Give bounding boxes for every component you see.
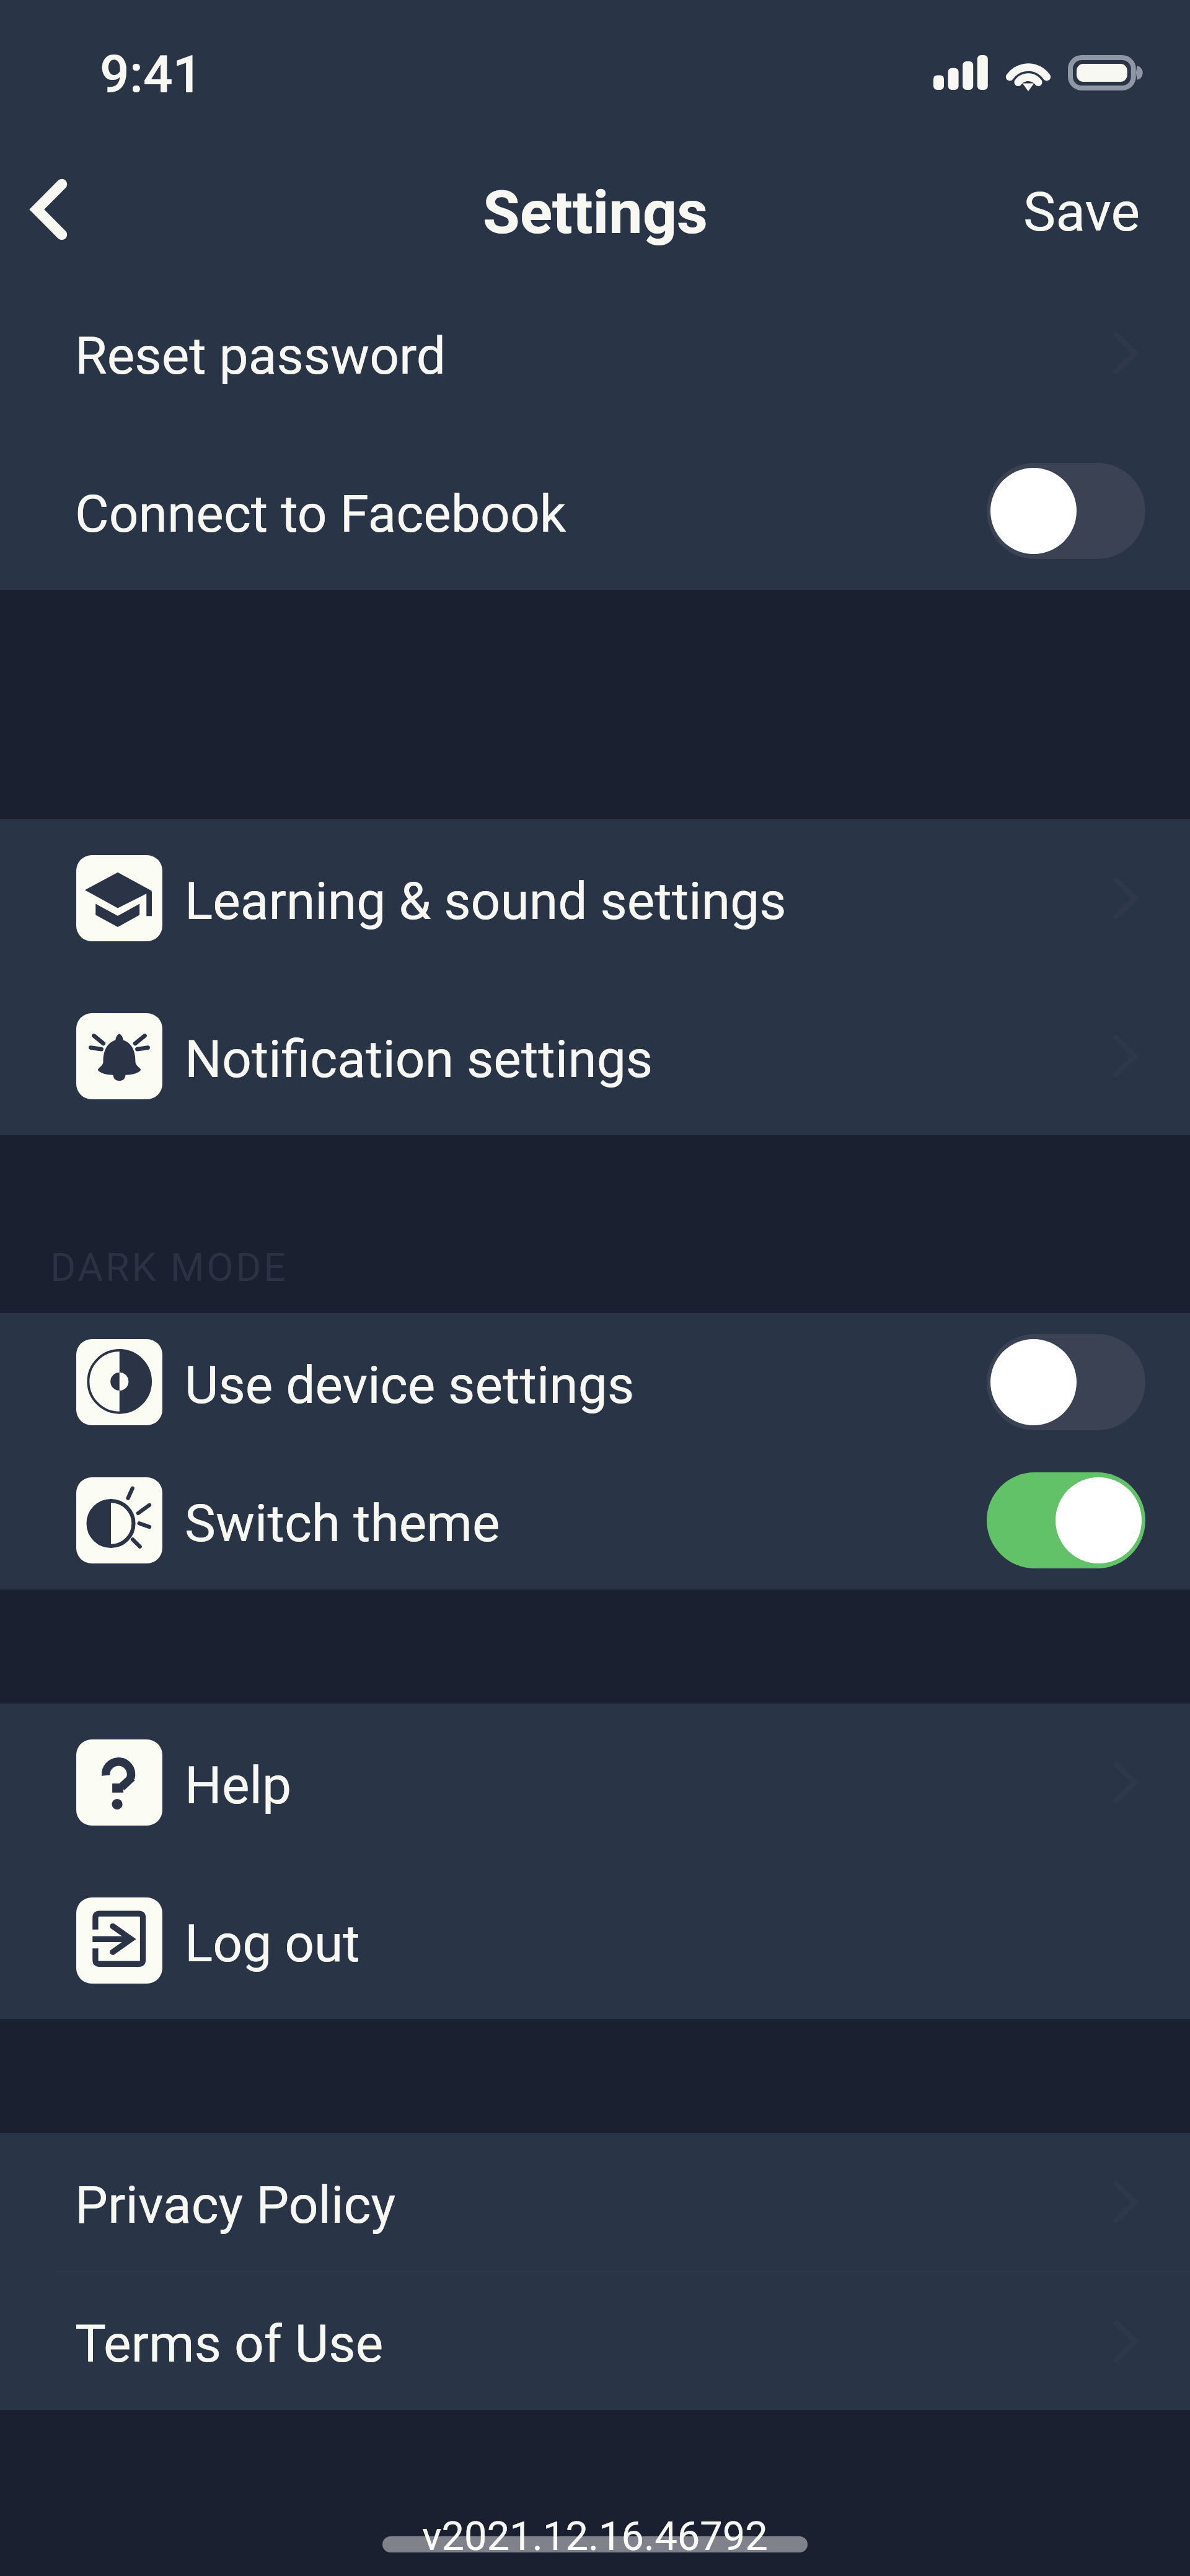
staticText: DARK MODE xyxy=(50,1245,288,1291)
button[interactable]: Terms of Use xyxy=(0,2272,1190,2410)
button[interactable]: Learning & sound settings xyxy=(0,819,1190,977)
button[interactable]: On xyxy=(987,1472,1145,1568)
button[interactable]: Connect to Facebook xyxy=(0,432,1190,590)
button[interactable]: Reset password xyxy=(0,274,1190,432)
button[interactable]: Privacy Policy xyxy=(0,2133,1190,2271)
staticText: Privacy Policy xyxy=(75,2174,396,2235)
staticText: Terms of Use xyxy=(75,2313,384,2374)
button[interactable]: Save xyxy=(986,170,1190,261)
staticText: Log out xyxy=(185,1913,360,1974)
staticText: Reset password xyxy=(75,325,446,386)
button[interactable]: Switch theme xyxy=(0,1451,1190,1589)
staticText: 9:41 xyxy=(100,44,203,105)
staticText: Use device settings xyxy=(185,1355,635,1415)
button[interactable]: Log out xyxy=(0,1862,1190,2019)
staticText: Settings xyxy=(483,177,708,248)
button[interactable]: Back xyxy=(12,172,86,247)
staticText: Learning & sound settings xyxy=(185,871,787,931)
staticText: Switch theme xyxy=(185,1493,500,1554)
staticText: v2021.12.16.46792 xyxy=(0,2513,1190,2560)
button[interactable]: Notification settings xyxy=(0,977,1190,1135)
staticText: Connect to Facebook xyxy=(75,483,566,544)
staticText: Save xyxy=(1023,180,1140,244)
staticText: Notification settings xyxy=(185,1029,653,1089)
button[interactable]: Use device settings xyxy=(0,1313,1190,1451)
button[interactable]: Off xyxy=(987,1334,1145,1430)
button[interactable]: Help xyxy=(0,1703,1190,1862)
button[interactable]: Off xyxy=(987,463,1145,559)
staticText: Help xyxy=(185,1755,292,1816)
